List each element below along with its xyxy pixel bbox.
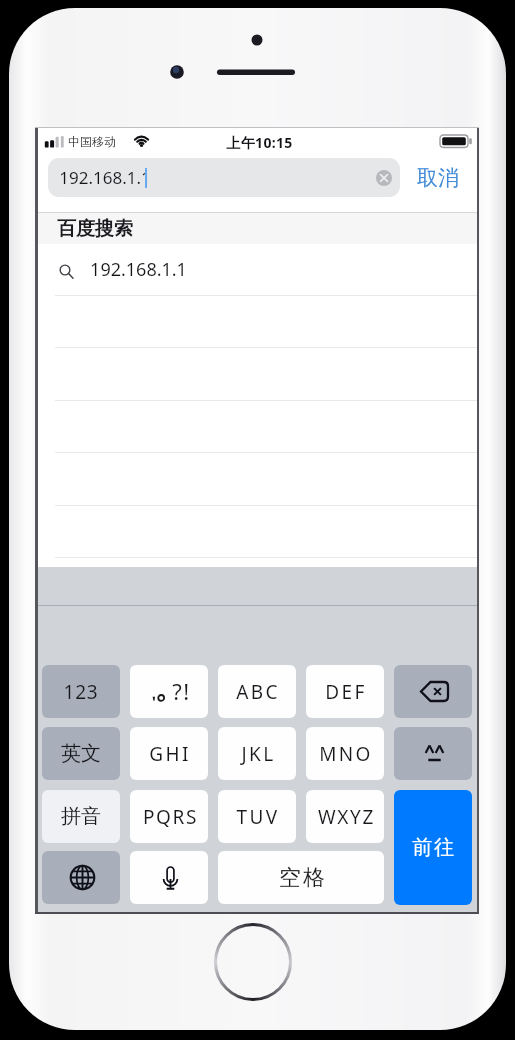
button[interactable]: 英文 (42, 727, 120, 780)
button[interactable]: 前往 (394, 790, 472, 905)
staticText: 拼音 (61, 804, 101, 829)
button[interactable]: 123 (42, 665, 120, 718)
button[interactable]: Dictation (130, 851, 208, 904)
staticText: 百度搜索 (57, 217, 133, 241)
staticText: 取消 (417, 165, 459, 191)
button[interactable]: Backspace (394, 665, 472, 718)
button[interactable]: 拼音 (42, 790, 120, 843)
staticText: PQRS (143, 804, 198, 830)
staticText: 192.168.1.1 (90, 257, 187, 282)
staticText: JKL (241, 741, 276, 767)
staticText: 中国移动 (68, 134, 116, 149)
staticText: GHI (149, 741, 191, 767)
button[interactable]: DEF (306, 665, 384, 718)
staticText: 123 (63, 679, 99, 705)
staticText: 英文 (61, 741, 101, 766)
button[interactable]: Clear text (376, 170, 392, 186)
staticText: 192.168.1.1 (59, 166, 151, 189)
button[interactable]: ABC (218, 665, 296, 718)
button[interactable]: 192.168.1.1 (48, 158, 400, 197)
staticText: 空格 (278, 864, 326, 892)
button[interactable]: JKL (218, 727, 296, 780)
button[interactable]: GHI (130, 727, 208, 780)
button[interactable]: WXYZ (306, 790, 384, 843)
button[interactable]: TUV (218, 790, 296, 843)
staticText: ABC (236, 679, 280, 705)
staticText: ?! (172, 676, 191, 706)
staticText: WXYZ (318, 804, 375, 830)
staticText: DEF (325, 679, 367, 705)
button[interactable]: 192.168.1.1 (38, 244, 477, 295)
staticText: MNO (319, 741, 373, 767)
button[interactable]: PQRS (130, 790, 208, 843)
button[interactable]: Emoji (394, 727, 472, 780)
staticText: 前往 (412, 835, 456, 860)
button[interactable]: Switch keyboard (42, 851, 120, 904)
button[interactable]: 空格 (218, 851, 384, 904)
button[interactable]: 取消 (409, 158, 467, 197)
staticText: TUV (236, 804, 280, 830)
button[interactable]: ?! (130, 665, 208, 718)
button[interactable]: MNO (306, 727, 384, 780)
staticText: 上午10:15 (226, 133, 293, 152)
